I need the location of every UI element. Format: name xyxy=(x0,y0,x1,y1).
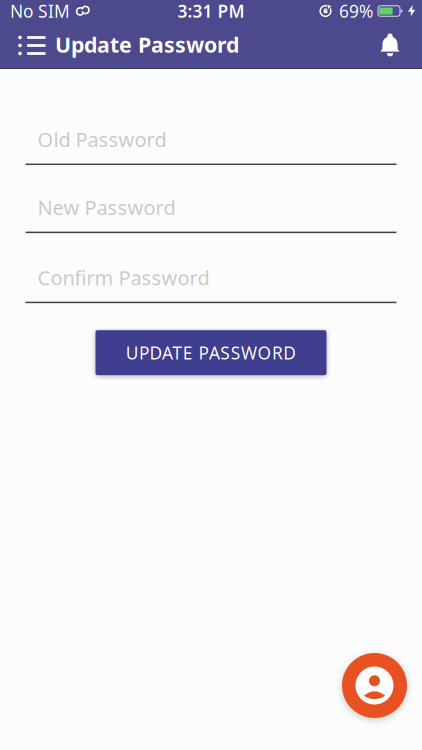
button[interactable]: UPDATE PASSWORD xyxy=(95,330,326,375)
staticText: 69% xyxy=(339,0,373,22)
staticText: Old Password xyxy=(37,126,166,153)
button[interactable]: Support xyxy=(342,653,407,718)
button[interactable]: New Password xyxy=(25,194,396,233)
staticText: UPDATE PASSWORD xyxy=(126,341,296,364)
button[interactable]: Menu xyxy=(0,35,55,56)
staticText: New Password xyxy=(37,194,175,221)
staticText: Update Password xyxy=(55,30,239,59)
staticText: 3:31 PM xyxy=(177,0,244,22)
button[interactable]: Old Password xyxy=(25,126,396,165)
staticText: Confirm Password xyxy=(37,264,209,291)
staticText: No SIM xyxy=(10,0,70,22)
button[interactable]: Notifications xyxy=(379,33,422,58)
button[interactable]: Confirm Password xyxy=(25,264,396,303)
